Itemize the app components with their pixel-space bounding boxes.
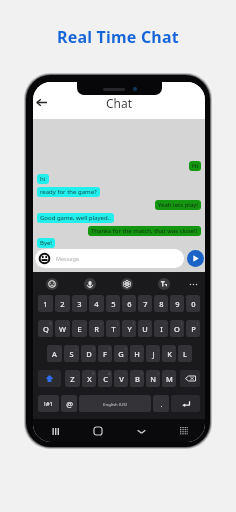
button[interactable]: Recents	[47, 423, 63, 439]
button[interactable]: Z	[65, 370, 80, 387]
button[interactable]: M	[162, 370, 176, 387]
button[interactable]: T	[106, 320, 120, 337]
button[interactable]: Yeah lets play!	[155, 200, 201, 210]
button[interactable]: Bye!	[37, 238, 55, 248]
staticText: 7	[143, 299, 148, 309]
button[interactable]: S	[64, 345, 79, 362]
button[interactable]: P	[186, 320, 200, 337]
button[interactable]: 9	[170, 295, 184, 312]
button[interactable]: 7	[138, 295, 152, 312]
staticText: ?	[141, 371, 143, 376]
button[interactable]: Switch keyboard	[176, 423, 192, 439]
staticText: L	[183, 349, 187, 359]
staticText: English (US)	[103, 401, 127, 407]
button[interactable]: .	[153, 395, 169, 412]
staticText: J	[152, 349, 155, 359]
button[interactable]: Good game, well played..	[37, 213, 114, 223]
button[interactable]: R	[89, 320, 104, 337]
button[interactable]: Send	[187, 250, 204, 267]
staticText: \	[67, 321, 69, 326]
button[interactable]: W	[55, 320, 70, 337]
button[interactable]: A	[47, 345, 62, 362]
staticText: %	[49, 321, 52, 326]
staticText: 0	[191, 299, 196, 309]
button[interactable]: Home	[90, 423, 106, 439]
button[interactable]: Backspace	[180, 370, 200, 387]
button[interactable]: @	[61, 395, 77, 412]
button[interactable]: Thanks for the match, that was close!!	[88, 226, 201, 236]
button[interactable]: E	[72, 320, 87, 337]
button[interactable]: ready for the game?	[37, 187, 100, 197]
button[interactable]: Y	[122, 320, 136, 337]
staticText: Chat	[106, 95, 133, 111]
staticText: &	[108, 371, 111, 376]
button[interactable]: F	[98, 345, 112, 362]
button[interactable]: V	[114, 370, 128, 387]
button[interactable]: U	[138, 320, 152, 337]
button[interactable]: O	[170, 320, 184, 337]
button[interactable]: 2	[55, 295, 70, 312]
staticText: }	[197, 321, 199, 326]
button[interactable]: Q	[38, 320, 53, 337]
button[interactable]: 3	[72, 295, 87, 312]
button[interactable]: 8	[154, 295, 168, 312]
button[interactable]: 5	[106, 295, 120, 312]
button[interactable]: N	[146, 370, 160, 387]
button[interactable]: hi	[37, 174, 49, 184]
button[interactable]: X	[82, 370, 96, 387]
staticText: +	[75, 346, 78, 351]
staticText: _	[77, 371, 79, 376]
button[interactable]: 6	[122, 295, 136, 312]
staticText: hi	[40, 175, 46, 183]
button[interactable]: G	[114, 345, 128, 362]
button[interactable]: C	[98, 370, 112, 387]
button[interactable]: Back	[33, 94, 50, 111]
staticText: P	[191, 324, 196, 334]
staticText: 5	[111, 299, 116, 309]
staticText: )	[109, 346, 111, 351]
button[interactable]: Keyboard option 1	[45, 277, 59, 291]
staticText: F	[103, 349, 107, 359]
button[interactable]: Enter	[171, 395, 200, 412]
button[interactable]: Keyboard option 4	[157, 277, 171, 291]
button[interactable]: B	[130, 370, 144, 387]
staticText: !	[158, 371, 159, 376]
button[interactable]: Hide keyboard	[133, 423, 149, 439]
button[interactable]: L	[178, 345, 192, 362]
staticText: Q	[43, 324, 49, 334]
staticText: ,	[174, 371, 175, 376]
staticText: R	[94, 324, 99, 334]
staticText: N	[150, 374, 156, 384]
button[interactable]: 1	[38, 295, 53, 312]
staticText: Bye!	[40, 239, 52, 247]
staticText: @	[66, 399, 73, 409]
staticText: $	[92, 371, 95, 376]
button[interactable]: Shift	[38, 370, 61, 387]
button[interactable]: J	[146, 345, 160, 362]
staticText: D	[86, 349, 92, 359]
button[interactable]: 0	[186, 295, 200, 312]
button[interactable]: More options	[186, 277, 200, 291]
staticText: ready for the game?	[40, 188, 97, 196]
button[interactable]: I	[154, 320, 168, 337]
staticText: M	[166, 374, 173, 384]
staticText: |	[84, 321, 86, 326]
button[interactable]: !#1	[38, 395, 59, 412]
button[interactable]: Hi	[189, 161, 201, 171]
staticText: '	[190, 346, 191, 351]
button[interactable]: 4	[89, 295, 104, 312]
button[interactable]: D	[81, 345, 96, 362]
button[interactable]: H	[130, 345, 144, 362]
staticText: I	[160, 324, 163, 334]
staticText: ~	[124, 371, 127, 376]
button[interactable]: Keyboard option 2	[83, 277, 97, 291]
staticText: Hi	[192, 162, 198, 170]
button[interactable]: Keyboard option 3	[120, 277, 134, 291]
staticText: T	[111, 324, 116, 334]
staticText: Thanks for the match, that was close!!	[91, 227, 198, 235]
button[interactable]: Message	[35, 249, 184, 268]
staticText: 6	[127, 299, 132, 309]
button[interactable]: English (US)	[79, 395, 151, 412]
staticText: (	[93, 346, 95, 351]
button[interactable]: K	[162, 345, 176, 362]
